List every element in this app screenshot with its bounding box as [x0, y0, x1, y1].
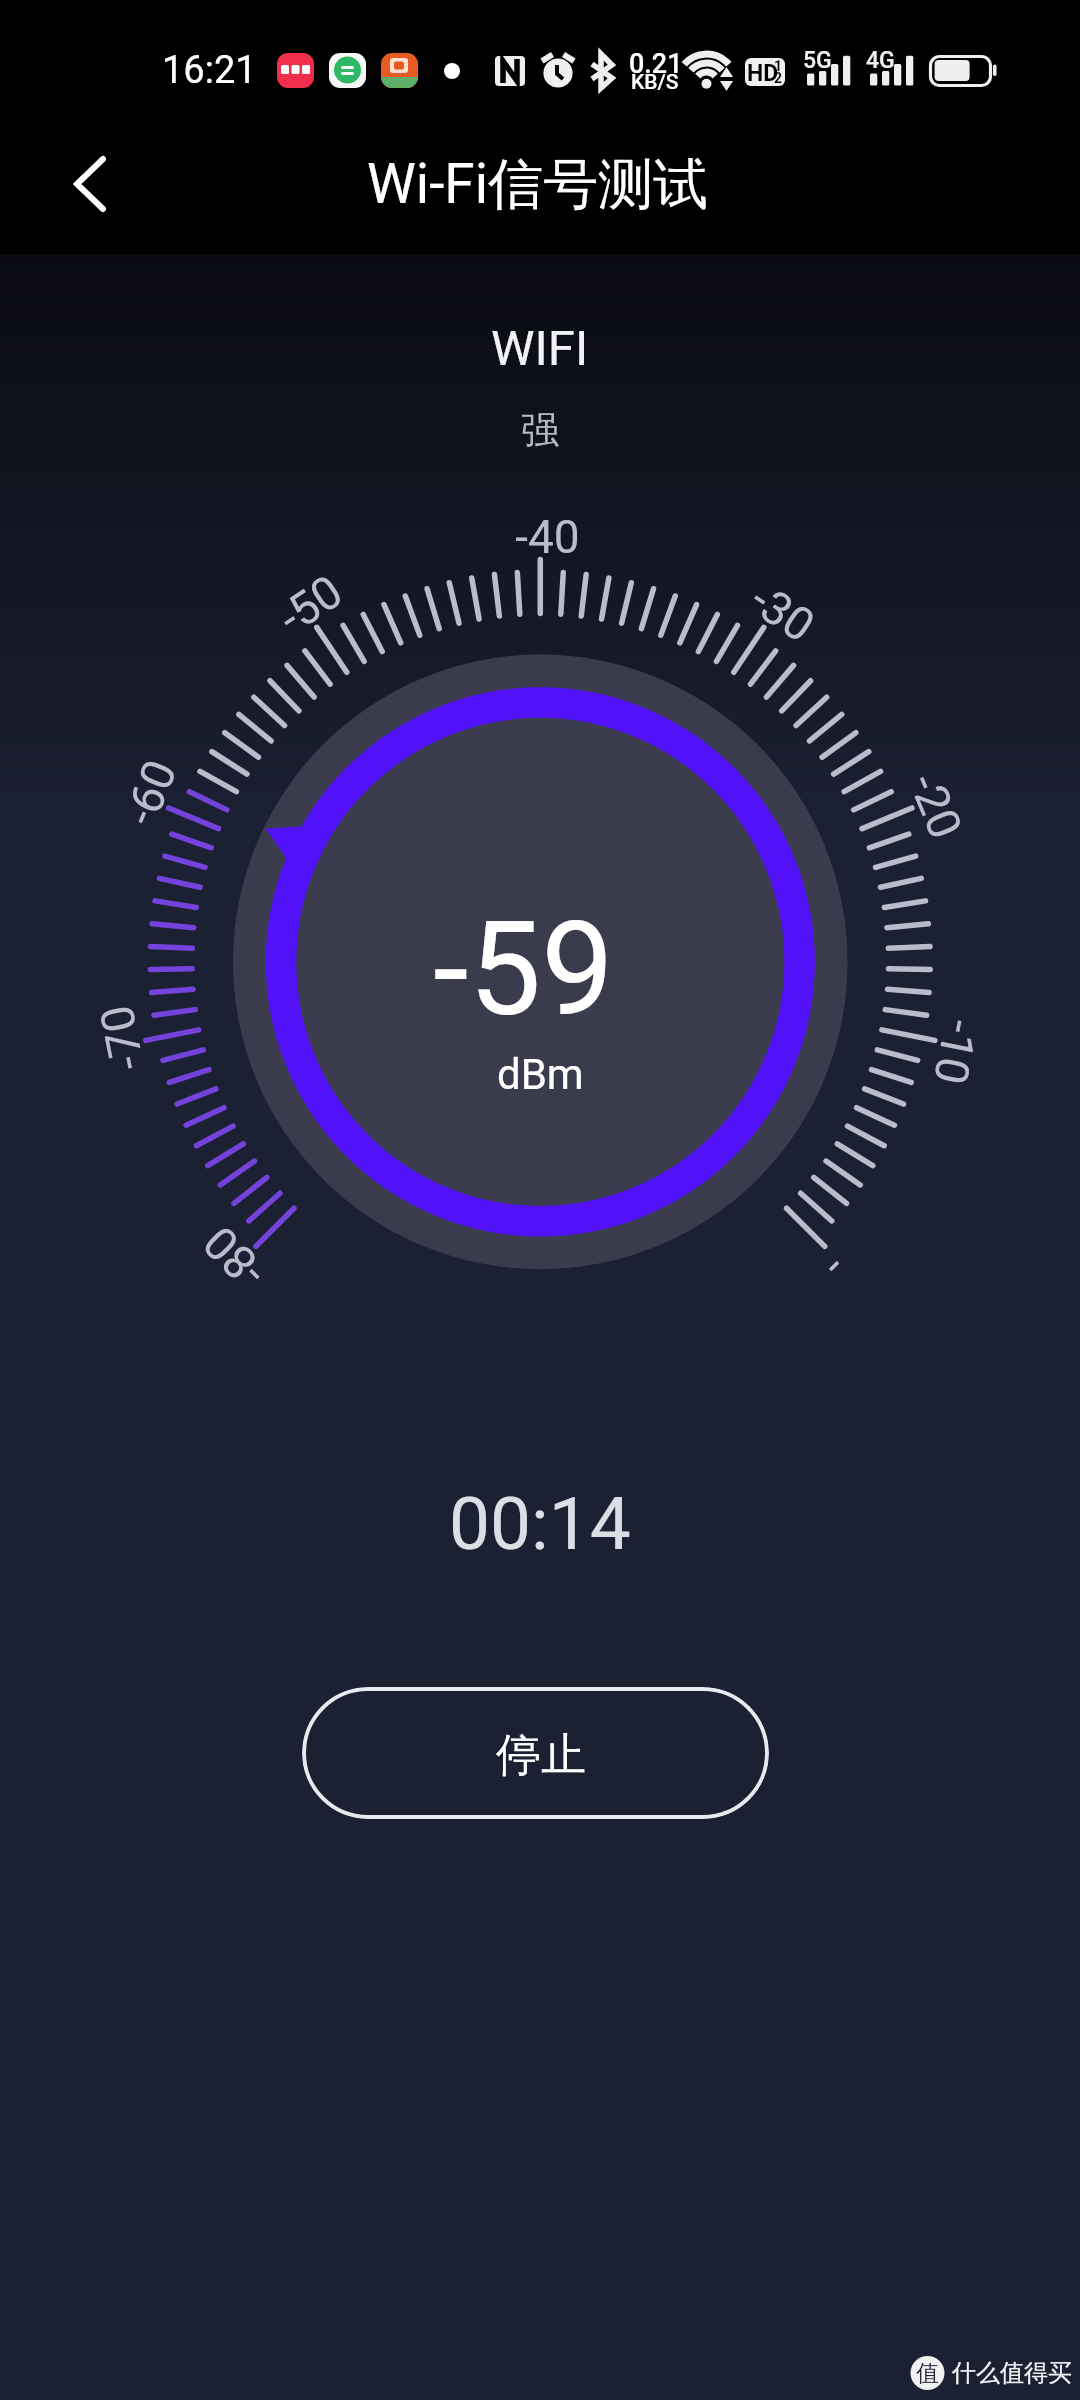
button[interactable]: Back — [30, 124, 150, 244]
staticText: 停止 — [496, 1727, 586, 1784]
staticText: WIFI — [491, 320, 589, 377]
staticText: 强 — [521, 406, 559, 454]
staticText: -59 — [433, 894, 614, 1045]
staticText: dBm — [497, 1050, 584, 1099]
button[interactable]: 停止 — [302, 1687, 769, 1819]
staticText: 16:21 — [162, 48, 257, 93]
staticText: 00:14 — [449, 1481, 631, 1567]
staticText: Wi-Fi信号测试 — [367, 150, 709, 219]
